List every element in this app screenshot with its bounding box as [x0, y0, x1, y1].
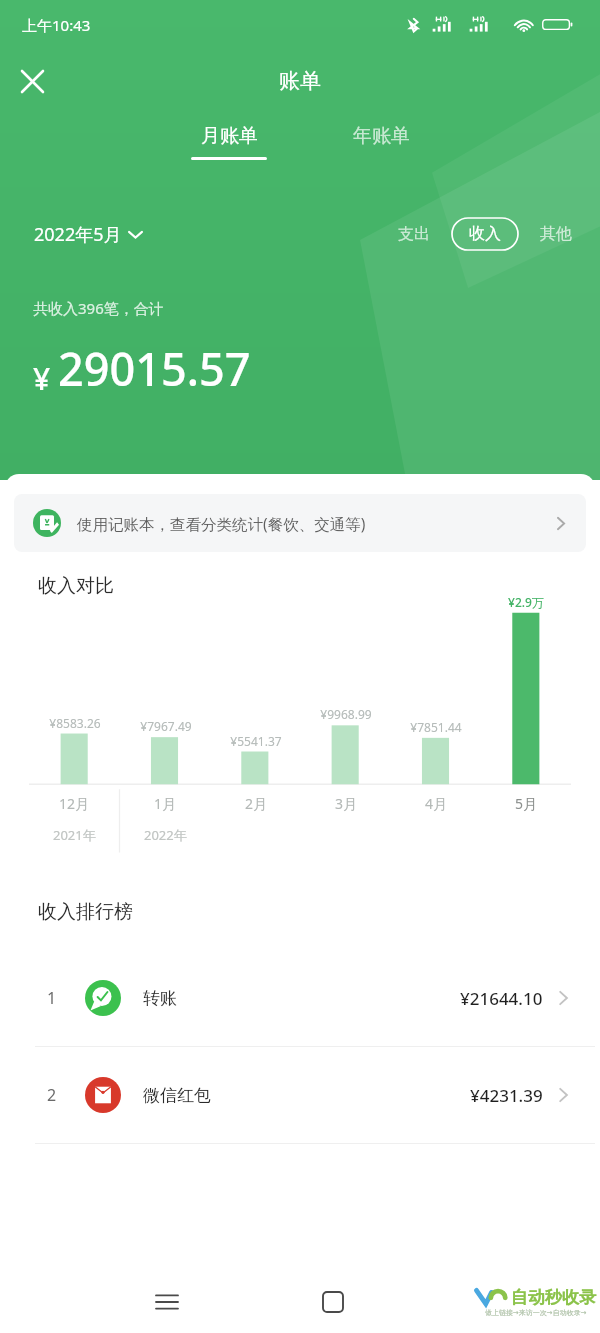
- staticText: 1: [47, 987, 57, 1009]
- staticText: 上午10:43: [22, 15, 91, 35]
- staticText: 共收入396笔，合计: [33, 298, 164, 318]
- staticText: 5月: [515, 794, 538, 813]
- staticText: 3月: [335, 794, 358, 813]
- staticText: 2021年: [53, 826, 96, 844]
- staticText: 自动秒收录: [511, 1287, 596, 1308]
- button[interactable]: Menu: [143, 1278, 191, 1326]
- button[interactable]: 年账单: [339, 120, 424, 152]
- staticText: 年账单: [353, 124, 410, 148]
- staticText: 微信红包: [143, 1085, 211, 1106]
- staticText: 12月: [59, 794, 90, 813]
- staticText: 2月: [245, 794, 268, 813]
- staticText: 月账单: [201, 124, 258, 148]
- button[interactable]: 月账单: [177, 120, 281, 164]
- staticText: 收入排行榜: [38, 900, 133, 924]
- staticText: ¥8583.26: [49, 715, 101, 731]
- staticText: 4月: [425, 794, 448, 813]
- staticText: 支出: [398, 224, 430, 244]
- staticText: ¥9968.99: [320, 706, 372, 722]
- staticText: ¥2.9万: [508, 594, 544, 610]
- button[interactable]: 2: [5, 1047, 595, 1143]
- button[interactable]: 1: [5, 950, 595, 1046]
- staticText: 29015.57: [58, 338, 251, 399]
- staticText: 2022年5月: [34, 222, 122, 247]
- staticText: ¥21644.10: [460, 987, 543, 1010]
- staticText: ¥4231.39: [470, 1084, 543, 1107]
- button[interactable]: 2022年5月: [34, 222, 142, 247]
- staticText: 收入: [469, 224, 501, 244]
- button[interactable]: Home: [309, 1278, 357, 1326]
- staticText: 2: [47, 1084, 57, 1106]
- staticText: 其他: [540, 224, 572, 244]
- staticText: ¥7967.49: [140, 718, 192, 734]
- staticText: 转账: [143, 988, 177, 1009]
- staticText: 使用记账本，查看分类统计(餐饮、交通等): [77, 513, 366, 534]
- staticText: 做上链接→来访一次→自动收录→: [485, 1308, 587, 1317]
- staticText: 收入对比: [38, 574, 114, 598]
- button[interactable]: 支出: [392, 218, 436, 250]
- staticText: ¥7851.44: [410, 719, 462, 735]
- staticText: ¥5541.37: [230, 733, 282, 749]
- button[interactable]: Close: [8, 57, 56, 105]
- staticText: 2022年: [144, 826, 187, 844]
- staticText: 1月: [154, 794, 177, 813]
- staticText: ¥: [33, 358, 51, 399]
- button[interactable]: 收入: [452, 218, 518, 250]
- button[interactable]: 使用记账本，查看分类统计(餐饮、交通等): [14, 494, 586, 552]
- button[interactable]: 其他: [534, 218, 578, 250]
- staticText: 账单: [279, 68, 321, 94]
